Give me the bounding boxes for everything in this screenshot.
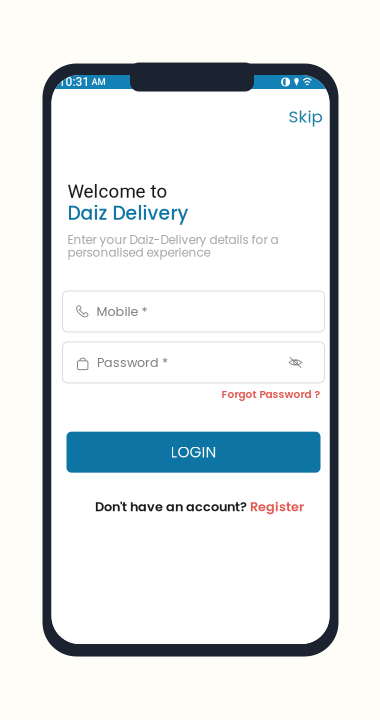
button[interactable]: Skip (276, 89, 329, 137)
staticText: personalised experience (67, 244, 210, 261)
staticText: Welcome to (67, 180, 167, 202)
staticText: Password * (97, 354, 168, 371)
staticText: Daiz Delivery (67, 200, 188, 226)
staticText: Don't have an account? (95, 498, 247, 516)
staticText: Skip (288, 105, 322, 128)
staticText: Mobile * (96, 303, 147, 320)
staticText: AM (89, 76, 105, 87)
button[interactable]: Password * (62, 342, 324, 383)
staticText: Register (247, 498, 304, 516)
button[interactable]: Mobile * (62, 291, 324, 332)
staticText: LOGIN (170, 441, 216, 463)
button[interactable]: LOGIN (66, 432, 320, 473)
staticText: Forgot Password ? (221, 387, 320, 402)
button[interactable]: Forgot Password ? (211, 383, 329, 406)
button[interactable]: Register (247, 498, 304, 516)
staticText: Enter your Daiz-Delivery details for a (67, 231, 278, 248)
staticText: 10:31 (58, 75, 89, 89)
